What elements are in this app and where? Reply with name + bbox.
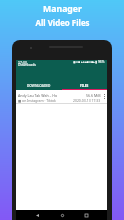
- staticText: 2020-03-13 17:33: [73, 98, 101, 103]
- staticText: All Video Files: [35, 18, 90, 29]
- staticText: ◉▫▪ ▴ ▸▴▪▫▪▴ ▮ 96%: [73, 60, 105, 64]
- staticText: FILES: [80, 84, 89, 88]
- staticText: DOWNLOADED: [27, 84, 51, 88]
- button[interactable]: Home: [58, 211, 66, 219]
- button[interactable]: DOWNLOADED: [16, 81, 61, 90]
- button[interactable]: FILES: [61, 81, 107, 90]
- staticText: ■ on Instagram · Tiktok: [18, 98, 56, 103]
- staticText: Manager: [43, 3, 82, 15]
- button[interactable]: More options: [101, 90, 107, 103]
- staticText: Andy Lau Tak Wah – Ho: [18, 93, 58, 98]
- staticText: 56.6 MiB: [86, 93, 101, 98]
- staticText: 17:33: [18, 60, 27, 64]
- button[interactable]: Recent apps: [82, 211, 90, 219]
- button[interactable]: Back: [33, 211, 41, 219]
- staticText: Downloads: [18, 62, 37, 67]
- button[interactable]: Andy Lau Tak Wah – Ho: [16, 90, 107, 103]
